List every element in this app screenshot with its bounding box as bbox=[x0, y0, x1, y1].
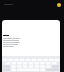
button[interactable]: Account bbox=[57, 3, 61, 7]
button[interactable]: Keyboard bbox=[2, 56, 60, 72]
